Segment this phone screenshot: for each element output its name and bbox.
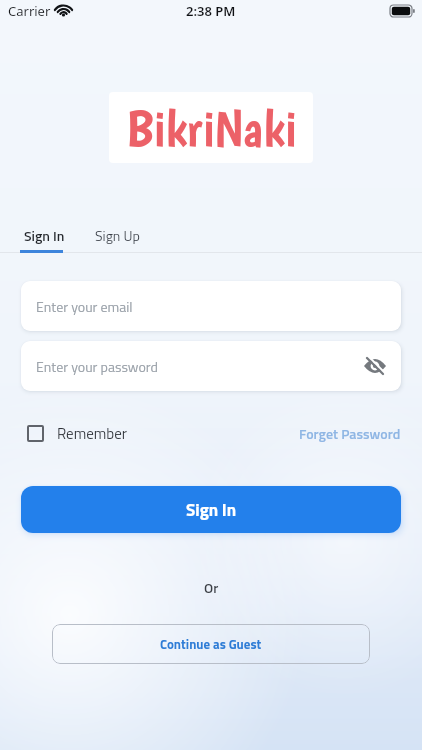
button[interactable]: Remember: [27, 422, 127, 445]
staticText: Sign In: [186, 497, 237, 523]
button[interactable]: Sign In: [24, 225, 65, 246]
staticText: Continue as Guest: [160, 634, 262, 654]
staticText: Carrier: [8, 2, 51, 20]
staticText: Enter your email: [36, 296, 133, 317]
staticText: Enter your password: [36, 356, 158, 377]
button[interactable]: Enter your email: [21, 281, 401, 331]
button[interactable]: Sign In: [21, 486, 401, 533]
button[interactable]: Continue as Guest: [52, 624, 370, 664]
staticText: Or: [204, 577, 219, 598]
button[interactable]: Forget Password: [299, 423, 401, 444]
button[interactable]: Sign Up: [95, 225, 140, 246]
staticText: BikriNaki: [126, 97, 297, 159]
staticText: 2:38 PM: [186, 2, 236, 20]
button[interactable]: Enter your password: [21, 341, 401, 391]
button[interactable]: [363, 354, 387, 378]
staticText: Remember: [57, 422, 127, 445]
